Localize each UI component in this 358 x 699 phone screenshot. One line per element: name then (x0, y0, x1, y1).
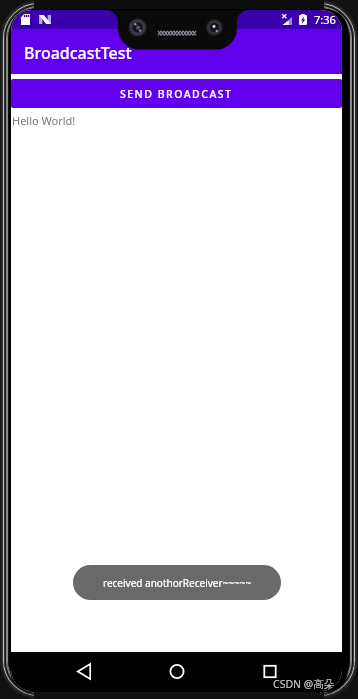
staticText: 7:36 (314, 12, 336, 27)
staticText: CSDN @高朵 (273, 677, 335, 691)
staticText: BroadcastTest (24, 42, 132, 64)
button[interactable]: Home (160, 652, 194, 691)
button[interactable]: SEND BROADCAST (11, 79, 342, 108)
staticText: Hello World! (12, 113, 76, 128)
staticText: received anothorReceiver~~~~~ (103, 576, 252, 590)
staticText: SEND BROADCAST (120, 87, 233, 101)
button[interactable]: Recent apps (253, 652, 287, 691)
button[interactable]: Back (67, 652, 101, 691)
